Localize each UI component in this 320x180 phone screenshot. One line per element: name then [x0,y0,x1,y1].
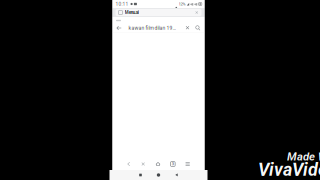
button[interactable]: Stop [140,161,146,167]
button[interactable]: Home [153,170,163,180]
staticText: VivaVideo [258,159,320,180]
staticText: kawan film dilan 1991 [128,25,177,31]
button[interactable]: Recents [135,170,145,180]
staticText: 12% [179,1,186,6]
staticText: 10:11 [115,1,128,7]
button[interactable]: Menu.ai tab [115,9,201,16]
button[interactable]: Close tab [195,11,198,14]
button[interactable]: Clear [185,24,189,32]
button[interactable]: Site icon [118,10,122,14]
button[interactable]: Home [155,161,161,167]
button[interactable]: Search [195,24,200,32]
staticText: Menu.ai [125,10,139,15]
button[interactable]: Back [171,170,181,180]
button[interactable]: Menu [185,161,191,167]
button[interactable]: New tab [116,17,121,24]
staticText: 3 [172,162,174,166]
button[interactable]: Tabs [170,161,176,167]
staticText: Made Wi [287,150,320,163]
button[interactable]: Back [126,161,131,167]
button[interactable]: Back [116,24,121,32]
